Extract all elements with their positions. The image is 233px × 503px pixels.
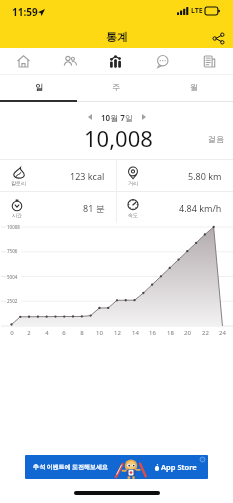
button[interactable]: 일 [0,75,77,102]
staticText: 10 [96,329,103,337]
staticText: 0 [10,329,14,337]
staticText: 4.84 km/h [179,202,222,214]
staticText: 월 [190,82,198,92]
staticText: 5.80 km [188,170,222,182]
button[interactable]: 속도 [127,192,222,224]
staticText: 4 [45,329,49,337]
staticText: 123 kcal [70,170,105,182]
button[interactable]: 칼로리 [11,160,105,192]
staticText: LTE [191,6,203,16]
staticText: 81 분 [83,202,105,214]
button[interactable]: 시간 [11,192,105,224]
staticText: 10008 [7,224,20,230]
staticText: App Store [161,462,197,472]
button[interactable]: Home [0,48,46,74]
staticText: 10월 7일 [101,112,133,123]
staticText: 11:59 [12,5,38,19]
staticText: 16 [149,329,156,337]
staticText: 2502 [7,298,18,304]
staticText: 2 [27,329,31,337]
staticText: 일 [35,82,43,92]
staticText: 통계 [106,30,128,44]
button[interactable]: Share [208,28,228,48]
staticText: 12 [114,329,121,337]
staticText: 속도 [128,212,138,218]
button[interactable]: Next day [137,110,151,124]
button[interactable]: 거리 [127,160,222,192]
button[interactable]: 추석 이벤트에 도전해보세요 [25,455,208,479]
staticText: 6 [62,329,66,337]
staticText: 걸음 [208,134,224,144]
staticText: 시간 [12,212,22,218]
staticText: 추석 이벤트에 도전해보세요 [33,463,109,471]
staticText: 칼로리 [11,180,26,186]
staticText: 24 [219,329,226,337]
staticText: 주 [112,82,120,92]
button[interactable]: Friends [46,48,92,74]
staticText: 14 [132,329,139,337]
button[interactable]: Statistics [92,48,139,74]
button[interactable]: 월 [155,75,233,102]
staticText: 거리 [128,180,138,186]
button[interactable]: 주 [77,75,155,102]
staticText: 10,008 [84,123,153,153]
staticText: 18 [167,329,174,337]
button[interactable]: News [186,48,233,74]
staticText: 22 [202,329,209,337]
staticText: 7506 [7,248,18,254]
button[interactable]: Chat [139,48,186,74]
staticText: 5004 [7,274,18,280]
staticText: 20 [184,329,191,337]
staticText: 8 [80,329,84,337]
button[interactable]: Previous day [83,110,97,124]
